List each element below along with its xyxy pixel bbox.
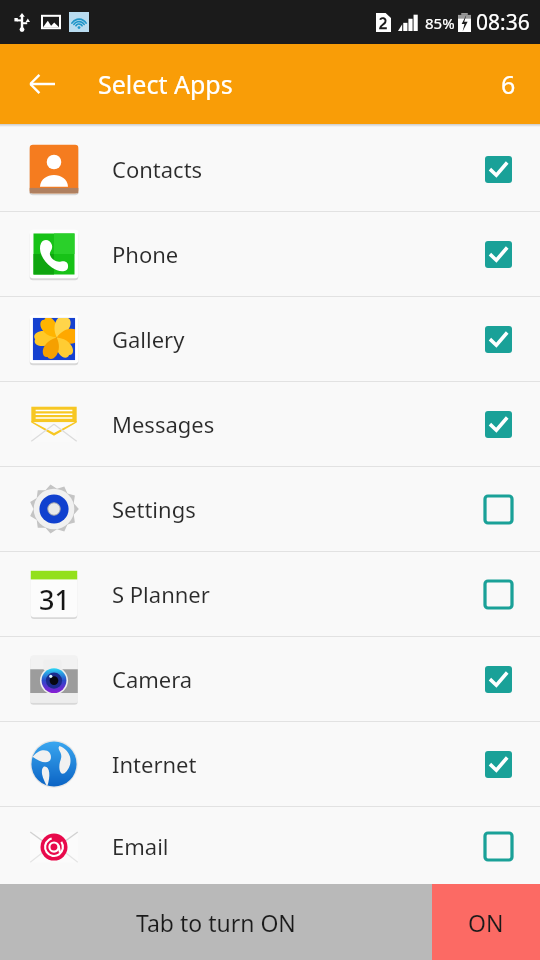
- staticText: 31: [39, 581, 70, 618]
- button[interactable]: Selected: [480, 236, 516, 272]
- staticText: Gallery: [112, 324, 480, 354]
- button[interactable]: Not selected: [480, 828, 516, 864]
- button[interactable]: Selected: [480, 151, 516, 187]
- staticText: S Planner: [112, 579, 480, 609]
- button[interactable]: Not selected: [480, 576, 516, 612]
- button[interactable]: Selected: [480, 406, 516, 442]
- staticText: Email: [112, 831, 480, 861]
- staticText: Select Apps: [98, 67, 233, 101]
- button[interactable]: Email: [0, 807, 540, 884]
- staticText: Contacts: [112, 154, 480, 184]
- staticText: 08:36: [476, 8, 530, 37]
- staticText: Phone: [112, 239, 480, 269]
- staticText: Settings: [112, 494, 480, 524]
- button[interactable]: Selected: [480, 321, 516, 357]
- staticText: 6: [501, 67, 516, 101]
- button[interactable]: ON: [432, 884, 540, 960]
- button[interactable]: Phone: [0, 212, 540, 296]
- button[interactable]: Messages: [0, 382, 540, 466]
- button[interactable]: Camera: [0, 637, 540, 721]
- button[interactable]: Tab to turn ON: [0, 884, 432, 960]
- staticText: Messages: [112, 409, 480, 439]
- staticText: Camera: [112, 664, 480, 694]
- button[interactable]: Back: [14, 56, 70, 112]
- staticText: Internet: [112, 749, 480, 779]
- button[interactable]: Gallery: [0, 297, 540, 381]
- button[interactable]: Internet: [0, 722, 540, 806]
- button[interactable]: Contacts: [0, 127, 540, 211]
- staticText: ON: [468, 907, 504, 938]
- button[interactable]: Not selected: [480, 491, 516, 527]
- button[interactable]: Selected: [480, 661, 516, 697]
- staticText: Tab to turn ON: [136, 907, 296, 938]
- button[interactable]: Settings: [0, 467, 540, 551]
- button[interactable]: 31: [0, 552, 540, 636]
- staticText: 85%: [425, 13, 455, 33]
- button[interactable]: Selected: [480, 746, 516, 782]
